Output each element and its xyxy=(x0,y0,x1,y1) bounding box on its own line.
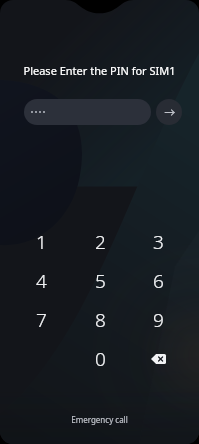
staticText: 3 xyxy=(153,229,164,255)
button[interactable]: 2 xyxy=(71,222,129,261)
button[interactable]: Backspace xyxy=(129,339,187,378)
button[interactable]: PIN entry field xyxy=(24,99,151,125)
button[interactable]: 6 xyxy=(129,261,187,300)
button[interactable]: Submit PIN xyxy=(156,99,182,125)
button[interactable]: 1 xyxy=(12,222,71,261)
staticText: Emergency call xyxy=(71,414,128,425)
button[interactable]: 3 xyxy=(129,222,187,261)
button[interactable]: 8 xyxy=(71,300,129,339)
button[interactable]: 9 xyxy=(129,300,187,339)
staticText: 5 xyxy=(95,268,106,294)
button[interactable]: Emergency call xyxy=(61,410,138,429)
staticText: 2 xyxy=(95,229,106,255)
button[interactable]: 0 xyxy=(71,339,129,378)
staticText: 4 xyxy=(36,268,47,294)
staticText: 7 xyxy=(36,307,47,333)
staticText: 6 xyxy=(153,268,164,294)
staticText: 9 xyxy=(153,307,164,333)
staticText: Please Enter the PIN for SIM1 xyxy=(23,63,176,78)
button[interactable]: 7 xyxy=(12,300,71,339)
staticText: 1 xyxy=(36,229,47,255)
staticText: 0 xyxy=(95,346,106,372)
staticText: 8 xyxy=(95,307,106,333)
button[interactable]: 4 xyxy=(12,261,71,300)
button[interactable]: 5 xyxy=(71,261,129,300)
